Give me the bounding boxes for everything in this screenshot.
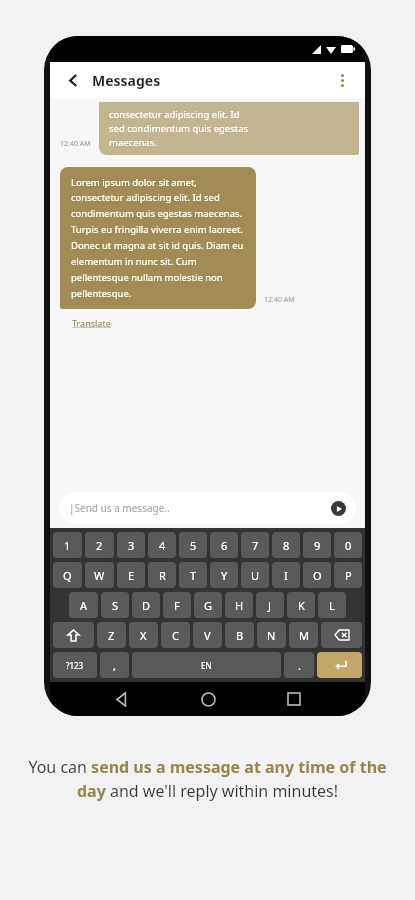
staticText: 12:40 AM: [264, 295, 295, 305]
staticText: J: [268, 598, 272, 613]
button[interactable]: Y: [210, 562, 238, 588]
staticText: E: [128, 568, 135, 583]
button[interactable]: S: [101, 592, 129, 618]
staticText: Translate: [72, 317, 111, 329]
staticText: EN: [201, 660, 212, 671]
button[interactable]: B: [225, 622, 254, 648]
staticText: ,: [113, 658, 116, 673]
button[interactable]: 7: [241, 532, 269, 558]
staticText: B: [236, 628, 244, 643]
button[interactable]: 1: [53, 532, 82, 558]
staticText: Y: [221, 568, 228, 583]
staticText: O: [313, 568, 322, 583]
staticText: 7: [252, 538, 259, 553]
staticText: 1: [64, 538, 71, 553]
button[interactable]: consectetur adipiscing elit. Id sed cond…: [99, 102, 359, 155]
button[interactable]: U: [241, 562, 269, 588]
staticText: G: [204, 598, 213, 613]
staticText: W: [94, 568, 105, 583]
staticText: 2: [96, 538, 103, 553]
button[interactable]: Shift: [53, 622, 94, 648]
button[interactable]: A: [69, 592, 98, 618]
staticText: consectetur adipiscing elit. Id sed cond…: [109, 108, 249, 149]
button[interactable]: Back: [62, 69, 84, 91]
button[interactable]: Q: [53, 562, 82, 588]
button[interactable]: EN: [132, 652, 281, 678]
button[interactable]: I: [272, 562, 300, 588]
button[interactable]: E: [117, 562, 145, 588]
button[interactable]: Home: [193, 684, 223, 714]
button[interactable]: |Send us a message..: [59, 492, 356, 524]
staticText: H: [235, 598, 244, 613]
button[interactable]: 2: [85, 532, 114, 558]
staticText: F: [174, 598, 180, 613]
button[interactable]: Lorem ipsum dolor sit amet, consectetur …: [60, 167, 256, 309]
staticText: |Send us a message..: [69, 501, 170, 515]
staticText: K: [298, 598, 305, 613]
button[interactable]: N: [257, 622, 286, 648]
staticText: Q: [63, 568, 72, 583]
staticText: .: [298, 658, 301, 673]
staticText: N: [267, 628, 276, 643]
button[interactable]: G: [194, 592, 222, 618]
staticText: Z: [108, 628, 115, 643]
button[interactable]: D: [132, 592, 160, 618]
button[interactable]: T: [179, 562, 207, 588]
button[interactable]: F: [163, 592, 191, 618]
button[interactable]: 4: [148, 532, 176, 558]
staticText: 5: [190, 538, 197, 553]
staticText: 3: [128, 538, 135, 553]
staticText: L: [329, 598, 335, 613]
button[interactable]: C: [161, 622, 190, 648]
button[interactable]: Send: [331, 501, 346, 516]
staticText: A: [80, 598, 88, 613]
button[interactable]: M: [289, 622, 318, 648]
staticText: X: [140, 628, 147, 643]
staticText: C: [172, 628, 179, 643]
button[interactable]: Recents: [279, 684, 309, 714]
staticText: P: [345, 568, 352, 583]
staticText: You can send us a message at any time of…: [28, 756, 387, 802]
staticText: T: [190, 568, 197, 583]
staticText: Messages: [92, 71, 161, 90]
button[interactable]: P: [334, 562, 362, 588]
button[interactable]: 0: [334, 532, 362, 558]
staticText: D: [142, 598, 151, 613]
button[interactable]: O: [303, 562, 331, 588]
button[interactable]: Z: [97, 622, 126, 648]
button[interactable]: V: [193, 622, 222, 648]
staticText: 0: [345, 538, 352, 553]
staticText: M: [299, 628, 309, 643]
button[interactable]: 8: [272, 532, 300, 558]
button[interactable]: Backspace: [321, 622, 362, 648]
button[interactable]: 5: [179, 532, 207, 558]
staticText: 8: [283, 538, 290, 553]
button[interactable]: 3: [117, 532, 145, 558]
button[interactable]: W: [85, 562, 114, 588]
button[interactable]: ?123: [53, 652, 97, 678]
staticText: 6: [221, 538, 228, 553]
staticText: 9: [314, 538, 321, 553]
button[interactable]: K: [287, 592, 315, 618]
button[interactable]: L: [318, 592, 346, 618]
button[interactable]: Enter: [317, 652, 362, 678]
staticText: V: [204, 628, 211, 643]
staticText: S: [112, 598, 119, 613]
button[interactable]: X: [129, 622, 158, 648]
staticText: ?123: [66, 660, 84, 671]
staticText: 12:40 AM: [60, 139, 91, 149]
button[interactable]: R: [148, 562, 176, 588]
button[interactable]: Back: [106, 684, 136, 714]
staticText: 4: [159, 538, 166, 553]
button[interactable]: More options: [331, 69, 353, 91]
button[interactable]: H: [225, 592, 253, 618]
button[interactable]: 9: [303, 532, 331, 558]
staticText: Lorem ipsum dolor sit amet, consectetur …: [71, 176, 245, 300]
staticText: R: [159, 568, 166, 583]
button[interactable]: Translate: [72, 315, 111, 331]
button[interactable]: ,: [100, 652, 129, 678]
button[interactable]: J: [256, 592, 284, 618]
staticText: U: [251, 568, 260, 583]
button[interactable]: 6: [210, 532, 238, 558]
button[interactable]: .: [284, 652, 314, 678]
